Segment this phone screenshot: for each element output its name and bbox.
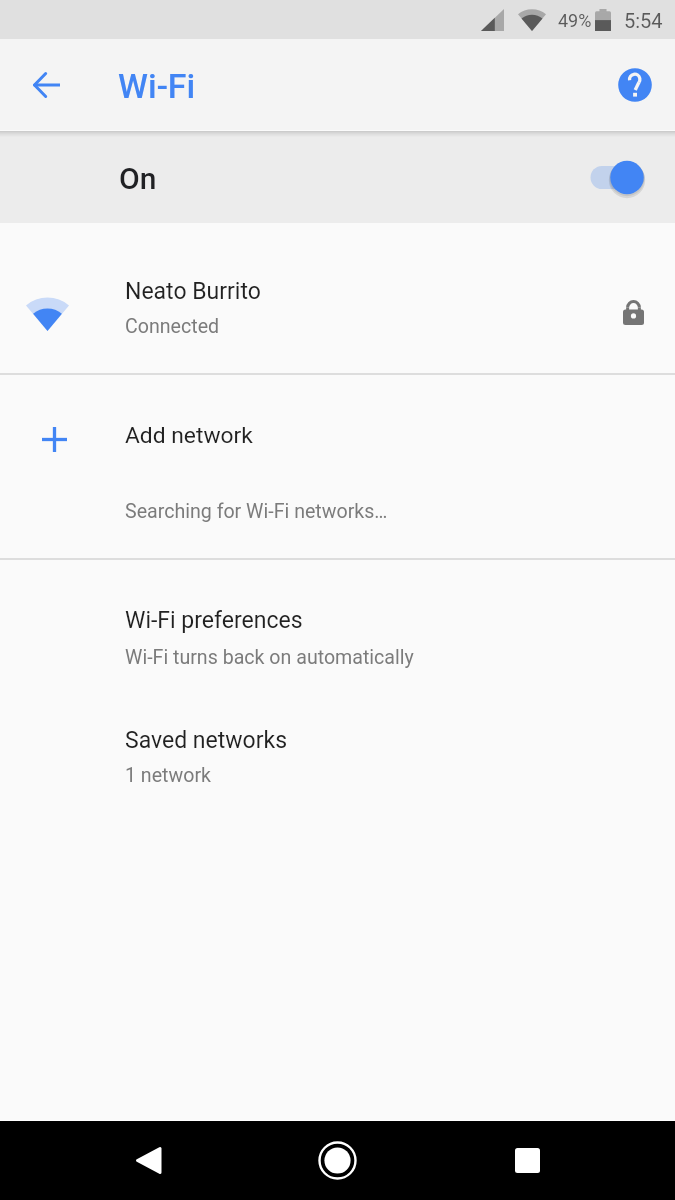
button[interactable]: Help [611,61,659,109]
staticText: Searching for Wi-Fi networks… [125,500,388,523]
button[interactable]: Add network [0,375,675,469]
staticText: Wi-Fi [118,66,196,106]
button[interactable]: Home [303,1126,372,1195]
staticText: On [119,161,157,196]
staticText: 5:54 [624,9,663,32]
staticText: 49% [558,10,592,31]
button[interactable]: Recent apps [493,1126,562,1195]
staticText: 1 network [125,764,211,787]
button[interactable]: Neato Burrito [0,223,675,373]
staticText: Add network [125,422,253,449]
staticText: Wi-Fi preferences [125,607,303,634]
button[interactable]: Wi-Fi preferences [0,590,675,676]
button[interactable]: Navigate up [20,59,72,111]
staticText: Wi-Fi turns back on automatically [125,646,414,669]
staticText: Saved networks [125,727,288,754]
button[interactable]: Saved networks [0,710,675,796]
button[interactable]: Back [113,1126,182,1195]
staticText: Connected [125,315,220,338]
staticText: Neato Burrito [125,278,261,305]
button[interactable]: On [0,130,675,223]
